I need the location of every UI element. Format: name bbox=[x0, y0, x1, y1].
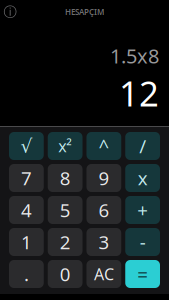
staticText: x bbox=[138, 166, 148, 190]
button[interactable]: Decimal point bbox=[9, 260, 44, 288]
staticText: AC bbox=[94, 263, 114, 285]
button[interactable]: Seven bbox=[9, 164, 44, 192]
button[interactable]: Squared bbox=[48, 132, 83, 160]
staticText: = bbox=[137, 262, 148, 286]
button[interactable]: Three bbox=[86, 228, 121, 256]
button[interactable]: Equals bbox=[125, 260, 160, 288]
staticText: 8 bbox=[60, 166, 71, 190]
button[interactable]: Five bbox=[48, 196, 83, 224]
staticText: - bbox=[140, 230, 146, 254]
button[interactable]: Power bbox=[86, 132, 121, 160]
button[interactable]: Minus bbox=[125, 228, 160, 256]
button[interactable]: One bbox=[9, 228, 44, 256]
staticText: 5 bbox=[60, 198, 71, 222]
staticText: 4 bbox=[21, 198, 32, 222]
button[interactable]: Six bbox=[86, 196, 121, 224]
staticText: 6 bbox=[98, 198, 109, 222]
staticText: 2 bbox=[60, 230, 71, 254]
staticText: 12 bbox=[119, 70, 159, 116]
staticText: ⓘ bbox=[3, 4, 16, 20]
button[interactable]: Info bbox=[0, 2, 20, 22]
staticText: + bbox=[137, 198, 148, 222]
staticText: HESAPÇIM bbox=[65, 7, 104, 17]
button[interactable]: Two bbox=[48, 228, 83, 256]
button[interactable]: Plus bbox=[125, 196, 160, 224]
staticText: 3 bbox=[98, 230, 109, 254]
button[interactable]: Divide bbox=[125, 132, 160, 160]
staticText: x² bbox=[58, 135, 72, 157]
staticText: 9 bbox=[98, 166, 109, 190]
button[interactable]: Multiply bbox=[125, 164, 160, 192]
staticText: 1 bbox=[21, 230, 32, 254]
button[interactable]: Eight bbox=[48, 164, 83, 192]
button[interactable]: Nine bbox=[86, 164, 121, 192]
staticText: / bbox=[139, 134, 146, 158]
button[interactable]: Zero bbox=[48, 260, 83, 288]
staticText: 1.5x8 bbox=[110, 42, 159, 69]
button[interactable]: Four bbox=[9, 196, 44, 224]
staticText: 0 bbox=[60, 262, 71, 286]
button[interactable]: All clear bbox=[86, 260, 121, 288]
staticText: . bbox=[24, 262, 29, 286]
staticText: √ bbox=[20, 135, 32, 157]
button[interactable]: Square root bbox=[9, 132, 44, 160]
staticText: 7 bbox=[21, 166, 32, 190]
staticText: ^ bbox=[98, 134, 109, 158]
